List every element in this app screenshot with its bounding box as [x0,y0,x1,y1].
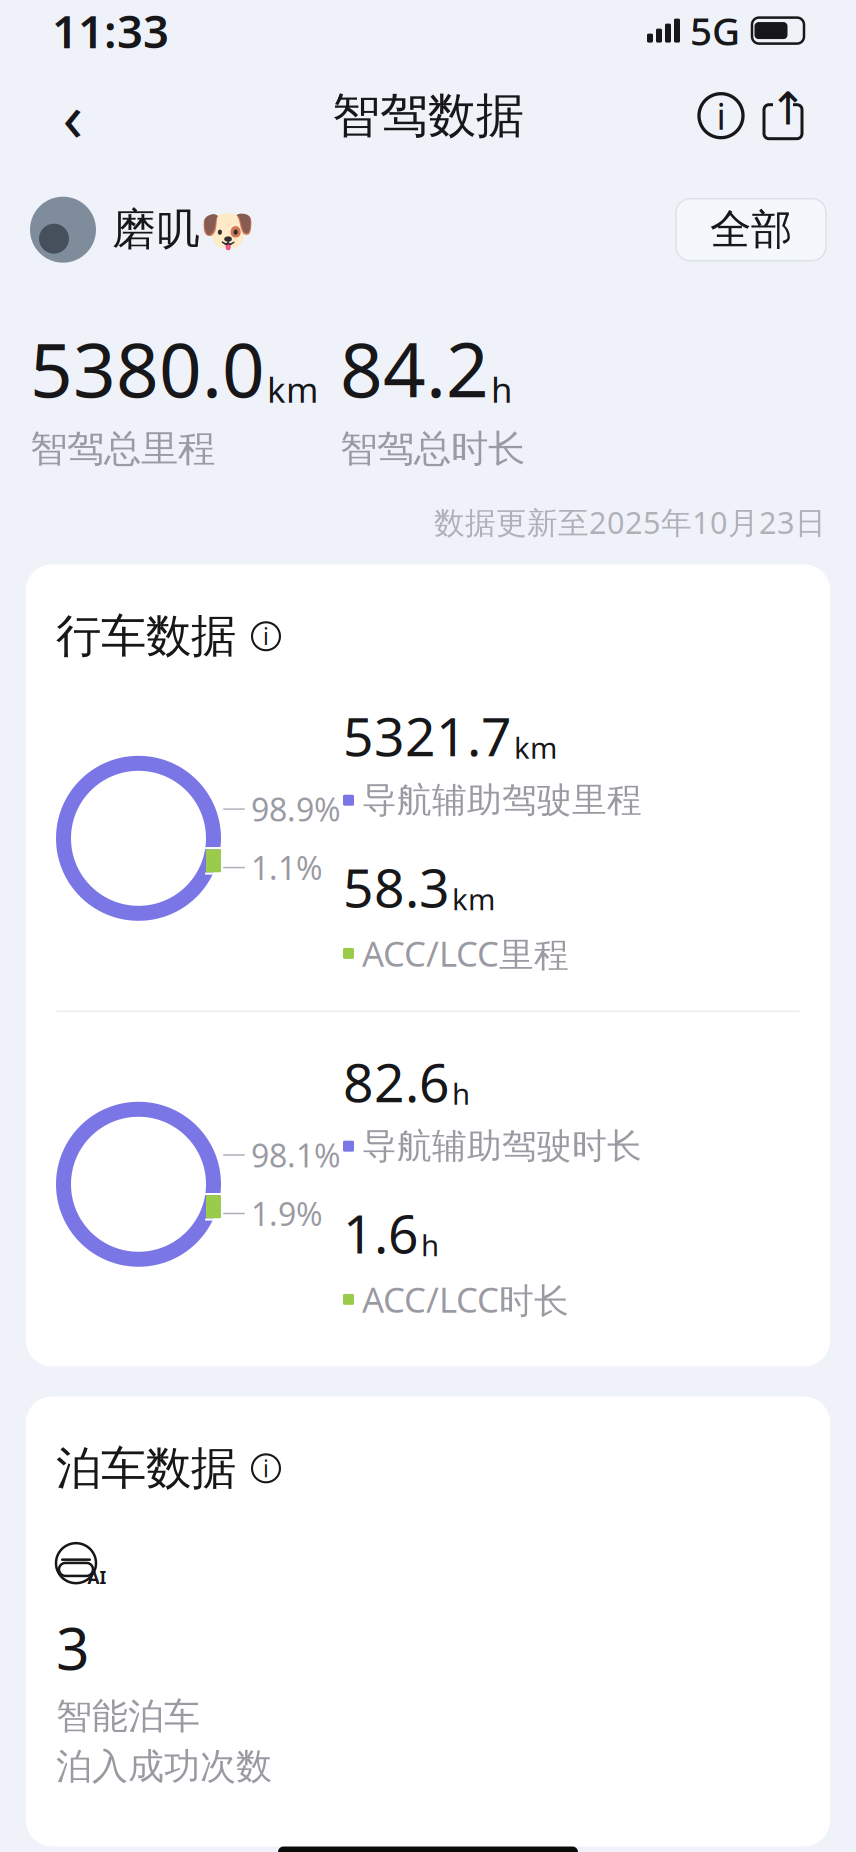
staticText: 1.9% [251,1192,323,1235]
staticText: 导航辅助驾驶时长 [362,1125,642,1167]
button[interactable]: 行车数据说明 [248,618,284,654]
staticText: ACC/LCC时长 [362,1276,569,1322]
staticText: ACC/LCC里程 [362,930,569,976]
staticText: 84.2 [340,319,489,418]
staticText: 导航辅助驾驶里程 [362,779,642,821]
staticText: i [263,1453,269,1483]
staticText: 11:33 [52,0,169,61]
staticText: 1.1% [251,846,323,889]
button[interactable]: 说明 [690,85,752,147]
staticText: 磨叽🐶 [112,203,255,257]
staticText: 泊车数据 [56,1440,236,1496]
staticText: ‹ [62,71,83,160]
staticText: 智驾总时长 [340,426,525,472]
staticText: km [267,366,318,412]
staticText: i [263,621,269,651]
staticText: 1.6 [343,1197,419,1268]
staticText: 智驾总里程 [30,426,215,472]
staticText: 98.1% [251,1134,341,1176]
staticText: 泊入成功次数 [56,1744,272,1788]
staticText: 数据更新至2025年10月23日 [434,502,826,542]
staticText: AI [87,1566,106,1589]
staticText: h [452,1074,470,1113]
staticText: km [514,728,557,767]
staticText: 58.3 [343,851,450,922]
button[interactable]: 分享 [752,85,814,147]
staticText: 82.6 [343,1046,450,1117]
staticText: 行车数据 [56,608,236,664]
staticText: 3 [56,1608,90,1686]
staticText: ↑ [769,83,807,134]
staticText: 全部 [710,204,792,255]
staticText: h [421,1225,439,1264]
staticText: km [452,879,495,918]
button[interactable]: 全部 [676,199,826,261]
staticText: 5321.7 [343,700,512,771]
staticText: 5380.0 [30,319,265,418]
button[interactable]: 泊车数据说明 [248,1450,284,1486]
staticText: 智能泊车 [56,1694,200,1738]
button[interactable]: 返回 [42,85,104,147]
staticText: i [716,92,725,140]
staticText: h [491,366,512,412]
staticText: 5G [690,5,740,56]
staticText: 98.9% [251,788,341,830]
staticText: 智驾数据 [332,86,524,145]
